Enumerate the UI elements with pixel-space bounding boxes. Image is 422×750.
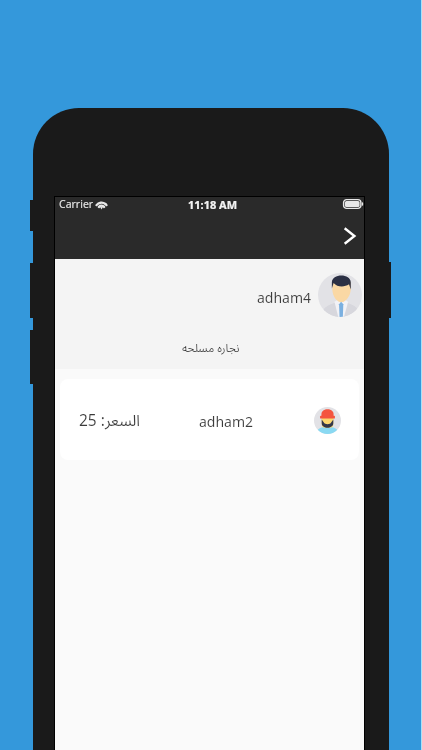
- staticText: 11:18 AM: [188, 197, 238, 212]
- button[interactable]: adham4: [55, 259, 364, 369]
- button[interactable]: السعر: 25: [60, 379, 359, 460]
- staticText: adham4: [257, 288, 312, 307]
- staticText: adham2: [199, 412, 254, 431]
- button[interactable]: Forward: [329, 215, 364, 257]
- staticText: نجاره مسلحه: [182, 336, 240, 360]
- staticText: السعر: 25: [79, 405, 141, 438]
- staticText: Carrier: [59, 197, 94, 211]
